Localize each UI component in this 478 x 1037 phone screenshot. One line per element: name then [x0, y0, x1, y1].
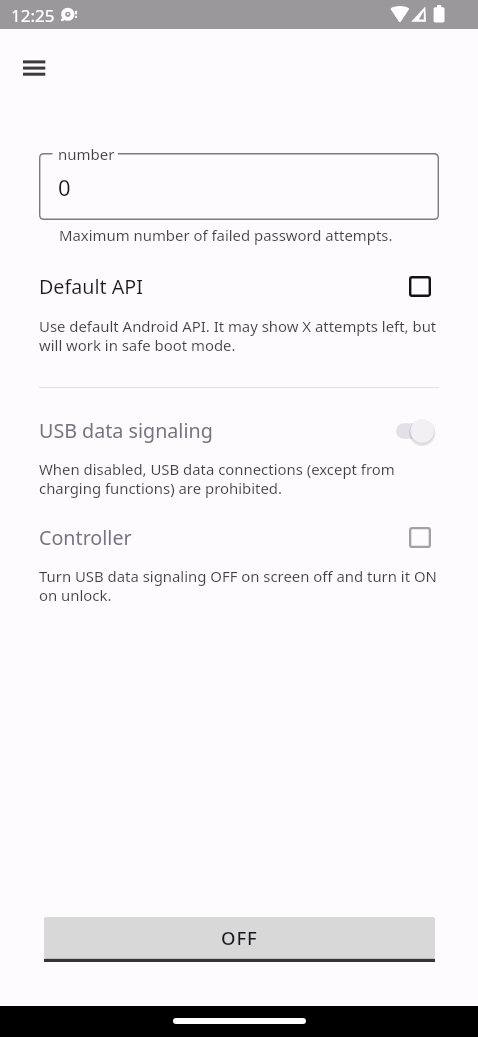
button[interactable]: Default API [0, 270, 478, 303]
staticText: OFF [221, 925, 258, 950]
staticText: 0 [58, 172, 71, 202]
staticText: Use default Android API. It may show X a… [39, 316, 437, 355]
button[interactable]: Controller [0, 521, 478, 554]
staticText: USB data signaling [39, 417, 213, 444]
staticText: When disabled, USB data connections (exc… [39, 459, 395, 498]
button[interactable]: Open navigation menu [10, 44, 58, 92]
staticText: Controller [39, 524, 132, 551]
button[interactable]: USB data signaling switch, on [396, 418, 434, 444]
button[interactable]: Default API checkbox, unchecked [409, 276, 431, 297]
button[interactable]: Controller checkbox, unchecked [409, 527, 431, 548]
button[interactable]: OFF [44, 917, 435, 962]
staticText: Default API [39, 273, 143, 300]
button[interactable]: USB data signaling [0, 414, 478, 447]
staticText: 12:25 [11, 4, 55, 27]
staticText: number [58, 144, 115, 164]
staticText: Maximum number of failed password attemp… [59, 225, 393, 245]
staticText: Turn USB data signaling OFF on screen of… [39, 566, 437, 605]
